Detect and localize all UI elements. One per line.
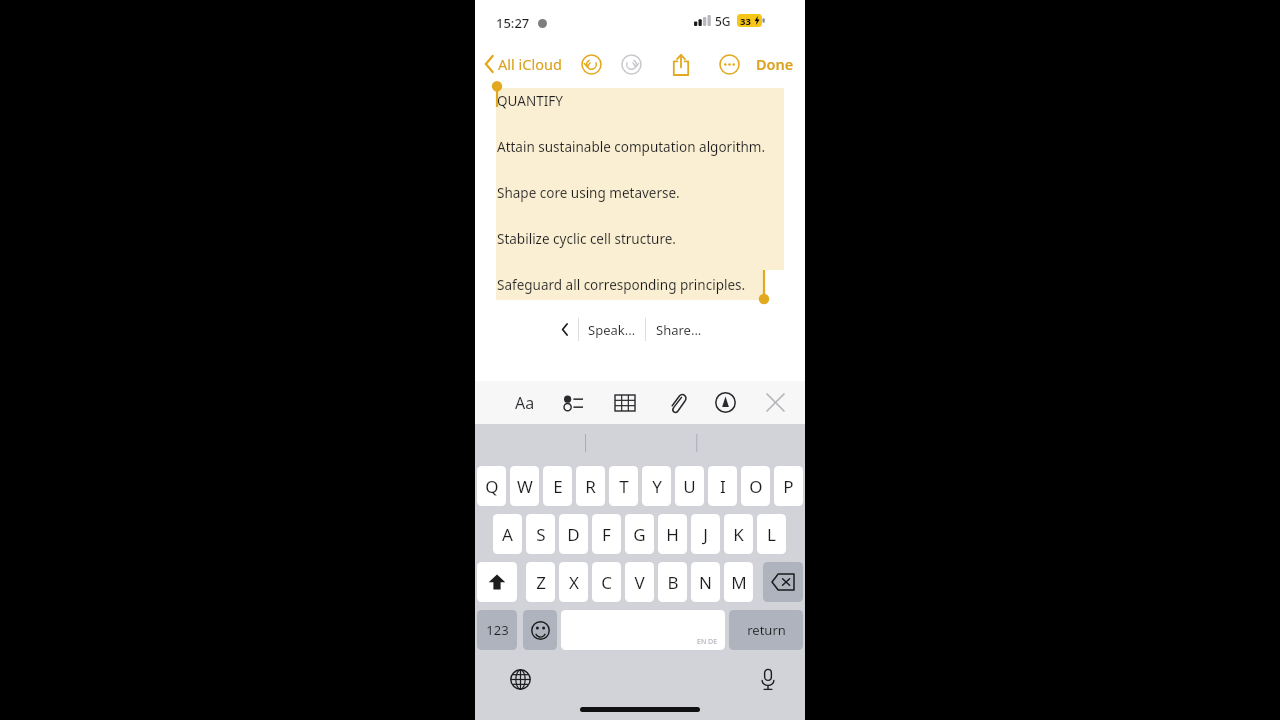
button[interactable]: O — [741, 466, 770, 506]
button[interactable]: Format — [503, 381, 547, 424]
button[interactable]: More — [713, 48, 745, 80]
button[interactable]: X — [559, 562, 588, 602]
button[interactable]: H — [658, 514, 687, 554]
staticText: T — [619, 475, 629, 498]
button[interactable]: Q — [477, 466, 506, 506]
button[interactable]: Table — [607, 381, 643, 424]
staticText: U — [683, 475, 696, 498]
staticText: Speak... — [588, 321, 636, 339]
button[interactable]: S — [526, 514, 555, 554]
staticText: Z — [536, 571, 546, 594]
staticText: G — [633, 523, 646, 546]
staticText: V — [634, 571, 645, 594]
button[interactable]: U — [675, 466, 704, 506]
staticText: H — [666, 523, 679, 546]
staticText: 5G — [715, 13, 731, 29]
button[interactable]: J — [691, 514, 720, 554]
staticText: Share... — [656, 321, 702, 339]
button[interactable]: Checklist — [555, 381, 591, 424]
button[interactable]: Undo — [575, 48, 607, 80]
button[interactable]: K — [724, 514, 753, 554]
button[interactable]: A — [493, 514, 522, 554]
button[interactable]: Space — [561, 610, 725, 650]
button[interactable]: Y — [642, 466, 671, 506]
staticText: X — [569, 571, 579, 594]
staticText: W — [517, 475, 533, 498]
button[interactable]: Previous — [551, 313, 578, 346]
button[interactable]: Redo — [615, 48, 647, 80]
button[interactable]: Emoji — [523, 610, 557, 650]
button[interactable]: G — [625, 514, 654, 554]
button[interactable]: All iCloud — [481, 48, 566, 80]
button[interactable]: D — [559, 514, 588, 554]
button[interactable]: I — [708, 466, 737, 506]
button[interactable]: Z — [526, 562, 555, 602]
staticText: 33 — [740, 15, 751, 28]
staticText: K — [733, 523, 744, 546]
button[interactable]: 123 — [477, 610, 517, 650]
staticText: Aa — [515, 392, 535, 414]
staticText: N — [699, 571, 712, 594]
staticText: D — [567, 523, 580, 546]
staticText: S — [536, 523, 546, 546]
staticText: B — [667, 571, 679, 594]
button[interactable]: Done — [750, 48, 800, 80]
staticText: F — [602, 523, 611, 546]
button[interactable]: Share... — [646, 313, 712, 346]
button[interactable]: V — [625, 562, 654, 602]
button[interactable]: W — [510, 466, 539, 506]
button[interactable]: Attach — [659, 381, 695, 424]
button[interactable]: T — [609, 466, 638, 506]
button[interactable]: Shift — [477, 562, 517, 602]
button[interactable]: M — [724, 562, 753, 602]
staticText: Y — [652, 475, 662, 498]
button[interactable]: Dictation — [751, 662, 785, 696]
staticText: 15:27 — [496, 14, 530, 32]
staticText: QUANTIFY — [497, 92, 563, 110]
button[interactable]: Speak... — [579, 313, 645, 346]
button[interactable]: L — [757, 514, 786, 554]
staticText: Done — [756, 54, 794, 74]
staticText: P — [783, 475, 794, 498]
staticText: Safeguard all corresponding principles. — [497, 276, 746, 294]
button[interactable]: E — [543, 466, 572, 506]
staticText: O — [749, 475, 763, 498]
staticText: Attain sustainable computation algorithm… — [497, 138, 766, 156]
staticText: Q — [485, 475, 499, 498]
staticText: A — [502, 523, 513, 546]
staticText: EN DE — [697, 637, 718, 647]
button[interactable]: N — [691, 562, 720, 602]
staticText: Stabilize cyclic cell structure. — [497, 230, 676, 248]
staticText: 123 — [486, 621, 509, 639]
staticText: I — [720, 475, 726, 498]
button[interactable]: Share — [665, 48, 697, 80]
staticText: M — [731, 571, 747, 594]
button[interactable]: return — [729, 610, 803, 650]
staticText: R — [585, 475, 596, 498]
button[interactable]: Markup — [707, 381, 743, 424]
button[interactable]: R — [576, 466, 605, 506]
staticText: All iCloud — [498, 54, 562, 74]
staticText: E — [553, 475, 563, 498]
button[interactable]: Backspace — [763, 562, 803, 602]
button[interactable]: Change keyboard — [503, 662, 537, 696]
staticText: L — [767, 523, 776, 546]
button[interactable]: F — [592, 514, 621, 554]
button[interactable]: C — [592, 562, 621, 602]
button[interactable]: P — [774, 466, 803, 506]
staticText: C — [601, 571, 612, 594]
staticText: return — [747, 621, 786, 639]
staticText: J — [703, 523, 708, 546]
button[interactable]: Close — [755, 381, 795, 424]
staticText: Shape core using metaverse. — [497, 184, 680, 202]
button[interactable]: B — [658, 562, 687, 602]
